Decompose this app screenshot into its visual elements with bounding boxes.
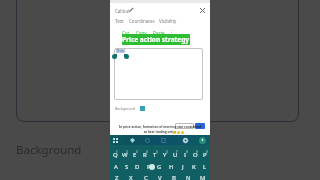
button[interactable]: D (132, 161, 143, 172)
staticText: 2 (126, 150, 128, 154)
button[interactable]: G (154, 161, 165, 172)
button[interactable]: N (181, 172, 195, 180)
button[interactable]: P (200, 149, 210, 160)
staticText: J (182, 163, 184, 171)
button[interactable]: A (110, 161, 121, 172)
staticText: W (122, 151, 128, 159)
staticText: E (133, 151, 137, 159)
staticText: Y (163, 151, 167, 159)
button[interactable]: M (196, 172, 210, 180)
button[interactable]: Q (110, 149, 120, 160)
button[interactable]: B (167, 172, 181, 180)
button[interactable]: I (180, 149, 190, 160)
staticText: C (144, 174, 148, 180)
button[interactable]: S (121, 161, 132, 172)
staticText: D (135, 163, 140, 171)
button[interactable]: Edit (129, 7, 134, 12)
staticText: A (114, 163, 118, 171)
staticText: 6 (166, 150, 168, 154)
button[interactable]: Price action strategy (122, 34, 190, 45)
button[interactable]: V (153, 172, 167, 180)
staticText: Callout (115, 8, 130, 14)
button[interactable]: C (139, 172, 153, 180)
button[interactable]: Close (200, 8, 205, 13)
staticText: 4 (146, 150, 148, 154)
button[interactable]: Coordinates (129, 18, 155, 24)
button[interactable] (175, 123, 194, 129)
staticText: M (200, 174, 206, 180)
button[interactable]: X (124, 172, 138, 180)
button[interactable] (195, 123, 205, 129)
button[interactable]: R (140, 149, 150, 160)
staticText: 9 (196, 150, 198, 154)
button[interactable]: Copy (136, 30, 147, 36)
button[interactable]: Themes (130, 138, 135, 143)
button[interactable]: Visibility (159, 18, 177, 24)
staticText: U (173, 151, 178, 159)
staticText: 3 (136, 150, 138, 154)
staticText: V (158, 174, 162, 180)
staticText: R (143, 151, 147, 159)
button[interactable]: K (188, 161, 199, 172)
staticText: Background (16, 142, 82, 158)
staticText: 7 (176, 150, 178, 154)
button[interactable]: Settings (183, 138, 188, 143)
staticText: 1 (116, 150, 118, 154)
button[interactable]: L (199, 161, 210, 172)
staticText: 5 (156, 150, 158, 154)
button[interactable]: H (166, 161, 177, 172)
button[interactable]: Clipboard (161, 138, 166, 143)
button[interactable]: E (130, 149, 140, 160)
button[interactable]: Stickers (145, 138, 150, 143)
button[interactable]: Y (160, 149, 170, 160)
staticText: B (172, 174, 176, 180)
staticText: K (192, 163, 196, 171)
button[interactable]: Paste (153, 30, 165, 36)
staticText: F (147, 163, 151, 171)
staticText: Price action strategy (122, 35, 190, 44)
staticText: S (125, 163, 129, 171)
staticText: Z (115, 174, 119, 180)
staticText: T (153, 151, 157, 159)
staticText: X (129, 174, 133, 180)
button[interactable]: Voice input (199, 137, 206, 144)
button[interactable]: O (190, 149, 200, 160)
staticText: L (203, 163, 207, 171)
staticText: P (203, 151, 207, 159)
button[interactable]: Cut (122, 30, 130, 36)
staticText: Background (115, 106, 135, 111)
button[interactable]: ⋮ (169, 29, 174, 35)
staticText: G (157, 163, 162, 171)
staticText: Q (113, 151, 118, 159)
button[interactable]: Z (110, 172, 124, 180)
button[interactable]: F (143, 161, 154, 172)
button[interactable]: U (170, 149, 180, 160)
staticText: as best trading setup (114, 130, 206, 134)
button[interactable]: Keyboard menu (113, 138, 118, 143)
staticText: This (116, 48, 124, 53)
staticText: 8 (186, 150, 188, 154)
button[interactable]: J (177, 161, 188, 172)
staticText: O (193, 151, 198, 159)
staticText: I (184, 151, 187, 159)
staticText: H (169, 163, 174, 171)
staticText: N (186, 174, 191, 180)
button[interactable]: T (150, 149, 160, 160)
button[interactable]: W (120, 149, 130, 160)
staticText: 0 (206, 150, 208, 154)
staticText: In price action, formation of morning st… (114, 125, 206, 129)
button[interactable]: Text (115, 18, 124, 24)
